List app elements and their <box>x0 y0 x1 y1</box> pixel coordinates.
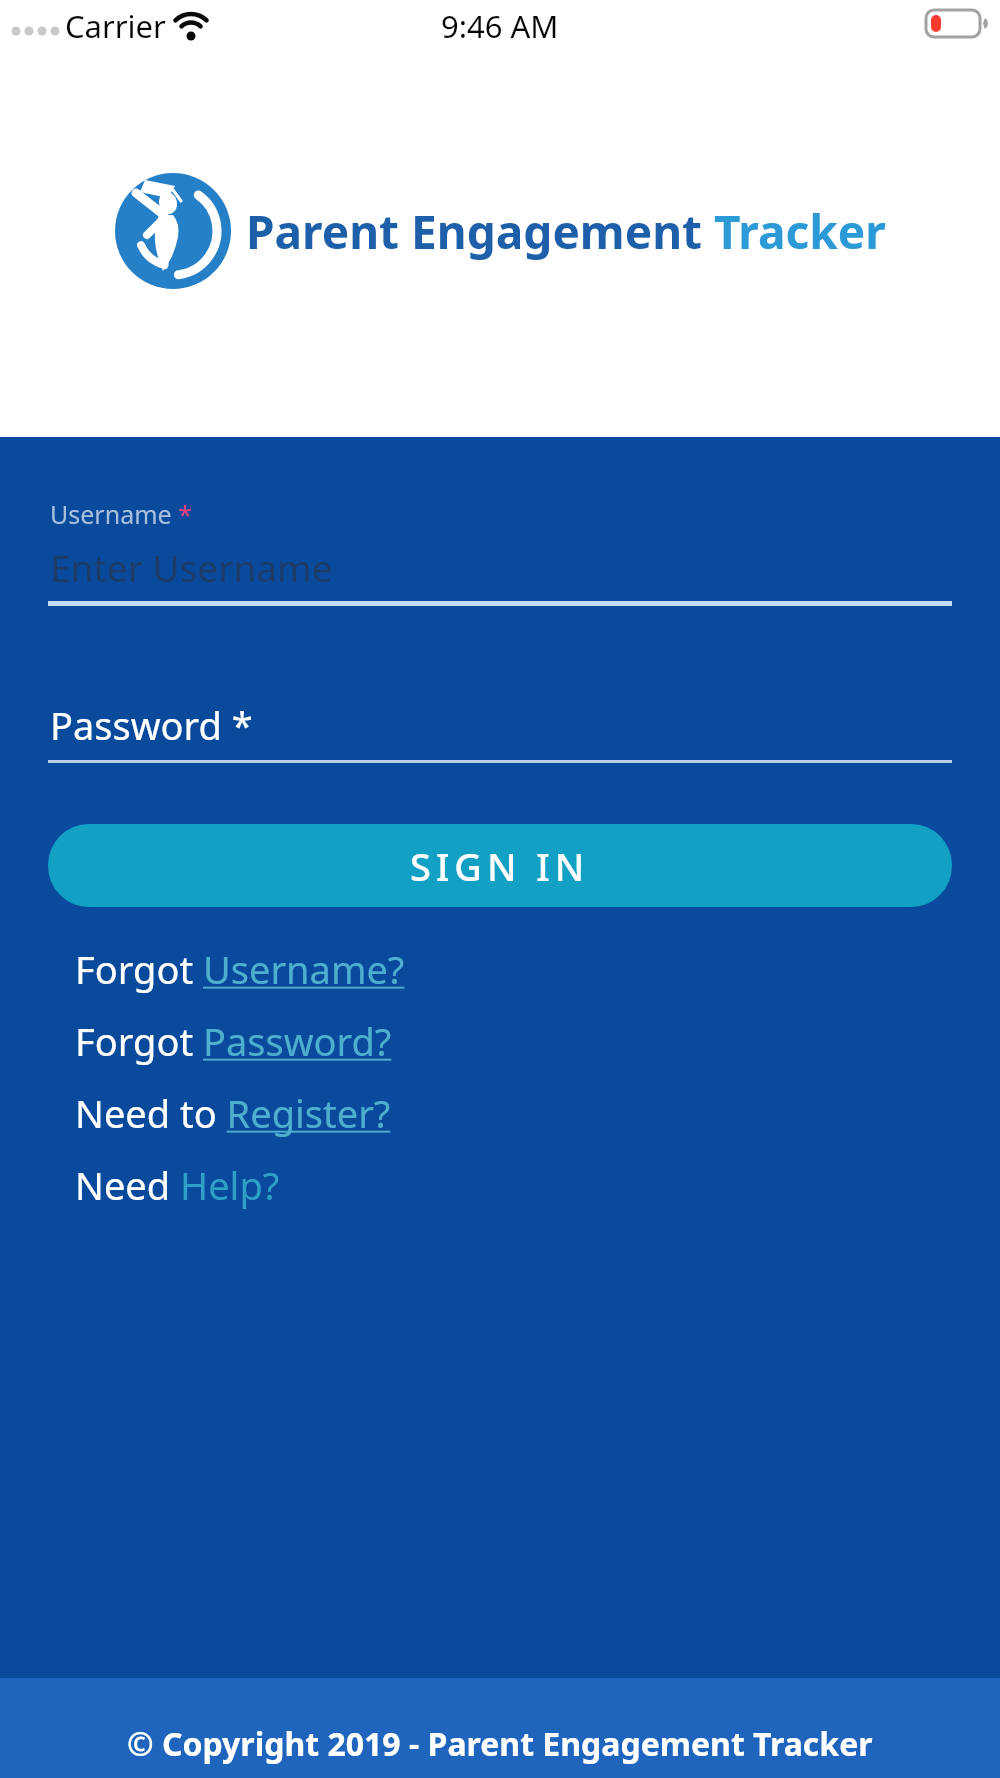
button[interactable]: Forgot Password? <box>75 1013 392 1069</box>
staticText: Need Help? <box>75 1159 280 1211</box>
staticText: SIGN IN <box>410 840 590 892</box>
staticText: Username * <box>50 497 192 531</box>
staticText: Enter Username <box>50 542 333 592</box>
button[interactable]: Need to Register? <box>75 1085 391 1141</box>
button[interactable]: SIGN IN <box>48 824 952 907</box>
button[interactable]: Password * <box>50 697 1000 753</box>
staticText: Parent Engagement Tracker <box>246 200 886 263</box>
staticText: Forgot Password? <box>75 1015 392 1067</box>
staticText: Carrier <box>65 5 166 47</box>
staticText: Password * <box>50 699 253 751</box>
button[interactable]: Forgot Username? <box>75 941 405 997</box>
button[interactable]: Need Help? <box>75 1157 280 1213</box>
staticText: 9:46 AM <box>441 5 559 47</box>
staticText: Forgot Username? <box>75 943 405 995</box>
staticText: © Copyright 2019 - Parent Engagement Tra… <box>127 1722 873 1766</box>
button[interactable]: Enter Username <box>50 539 1000 595</box>
staticText: Need to Register? <box>75 1087 391 1139</box>
